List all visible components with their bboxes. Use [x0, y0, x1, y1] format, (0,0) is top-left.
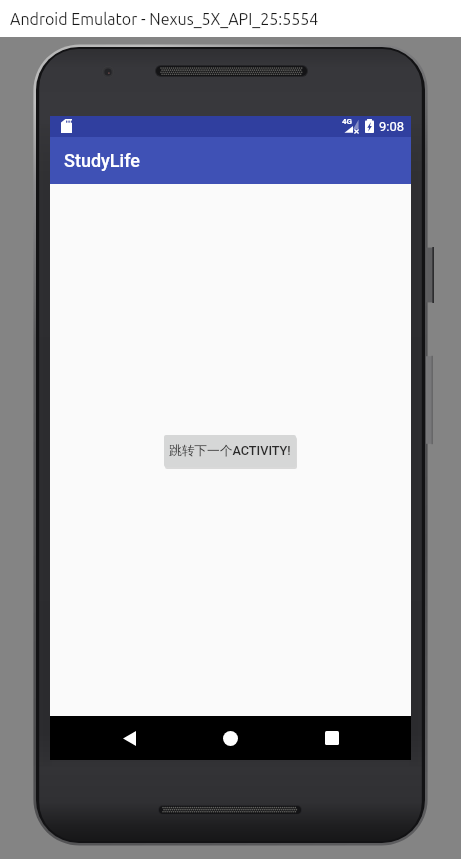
button[interactable]: Home [200, 716, 260, 760]
staticText: Android Emulator - Nexus_5X_API_25:5554 [10, 10, 319, 28]
staticText: 4G [342, 117, 353, 126]
button[interactable]: Back [99, 716, 159, 760]
staticText: 跳转下一个ACTIVITY! [169, 443, 291, 459]
button[interactable]: 跳转下一个ACTIVITY! [164, 435, 296, 467]
button[interactable]: Recents [302, 716, 362, 760]
staticText: 9:08 [379, 119, 405, 134]
staticText: StudyLife [64, 150, 140, 171]
